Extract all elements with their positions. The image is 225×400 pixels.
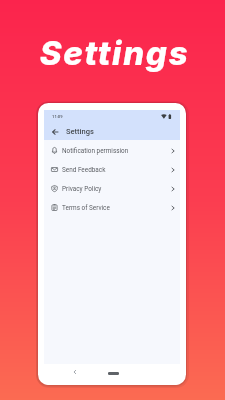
- staticText: 11:09: [52, 114, 63, 119]
- staticText: Settings: [2, 33, 225, 73]
- button[interactable]: Home: [102, 366, 124, 380]
- button[interactable]: Send Feedback: [44, 160, 180, 179]
- staticText: Notification permission: [62, 147, 129, 155]
- button[interactable]: Privacy Policy: [44, 179, 180, 198]
- button[interactable]: Terms of Service: [44, 198, 180, 217]
- staticText: Terms of Service: [62, 204, 110, 212]
- staticText: Privacy Policy: [62, 185, 102, 193]
- button[interactable]: Back: [46, 123, 63, 140]
- staticText: Settings: [66, 127, 94, 136]
- staticText: Send Feedback: [62, 166, 106, 174]
- button[interactable]: Notification permission: [44, 141, 180, 160]
- button[interactable]: Back: [68, 365, 82, 379]
